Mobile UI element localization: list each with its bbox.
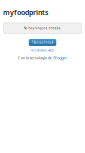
button[interactable]: Ver versión web xyxy=(31,48,54,52)
staticText: Ver versión web xyxy=(31,48,54,52)
staticText: Blogger xyxy=(53,55,67,60)
staticText: Página principal xyxy=(31,41,53,44)
button[interactable]: Blogger xyxy=(53,55,67,60)
staticText: myfoodprints xyxy=(3,7,48,17)
staticText: Con la tecnología de xyxy=(18,55,52,60)
button[interactable]: Página principal xyxy=(29,39,56,46)
staticText: No hay ninguna entrada. xyxy=(23,26,61,30)
